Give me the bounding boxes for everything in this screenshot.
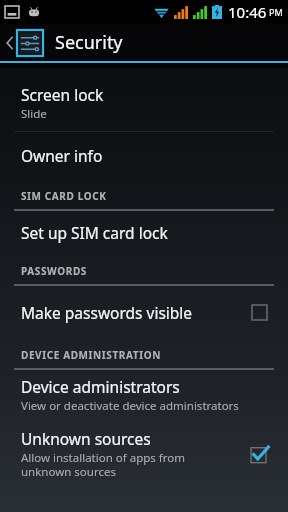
staticText: Slide [21,106,47,122]
staticText: Security [55,30,123,55]
staticText: Set up SIM card lock [21,222,168,243]
button[interactable]: Unknown sources [0,422,288,487]
staticText: Screen lock [21,84,104,105]
staticText: Device administrators [21,376,180,397]
staticText: Unknown sources [21,428,151,449]
staticText: PM [269,6,283,18]
button[interactable]: Toggle Unknown sources [244,439,274,469]
button[interactable]: Device administrators [0,370,288,421]
button[interactable]: Set up SIM card lock [0,211,288,254]
button[interactable]: Screen lock [0,76,288,131]
button[interactable]: Make passwords visible [0,286,288,338]
button[interactable]: Owner info [0,132,288,179]
button[interactable]: Toggle Make passwords visible [244,297,274,327]
staticText: Allow installation of apps from unknown … [21,450,236,479]
staticText: DEVICE ADMINISTRATION [21,348,161,362]
staticText: SIM CARD LOCK [21,189,107,203]
staticText: 10:46 [228,2,267,22]
staticText: Owner info [21,145,103,166]
staticText: View or deactivate device administrators [21,398,239,414]
button[interactable]: Navigate up [0,24,288,61]
staticText: Make passwords visible [21,302,193,323]
other: Navigate up [5,34,15,52]
staticText: PASSWORDS [21,264,87,278]
